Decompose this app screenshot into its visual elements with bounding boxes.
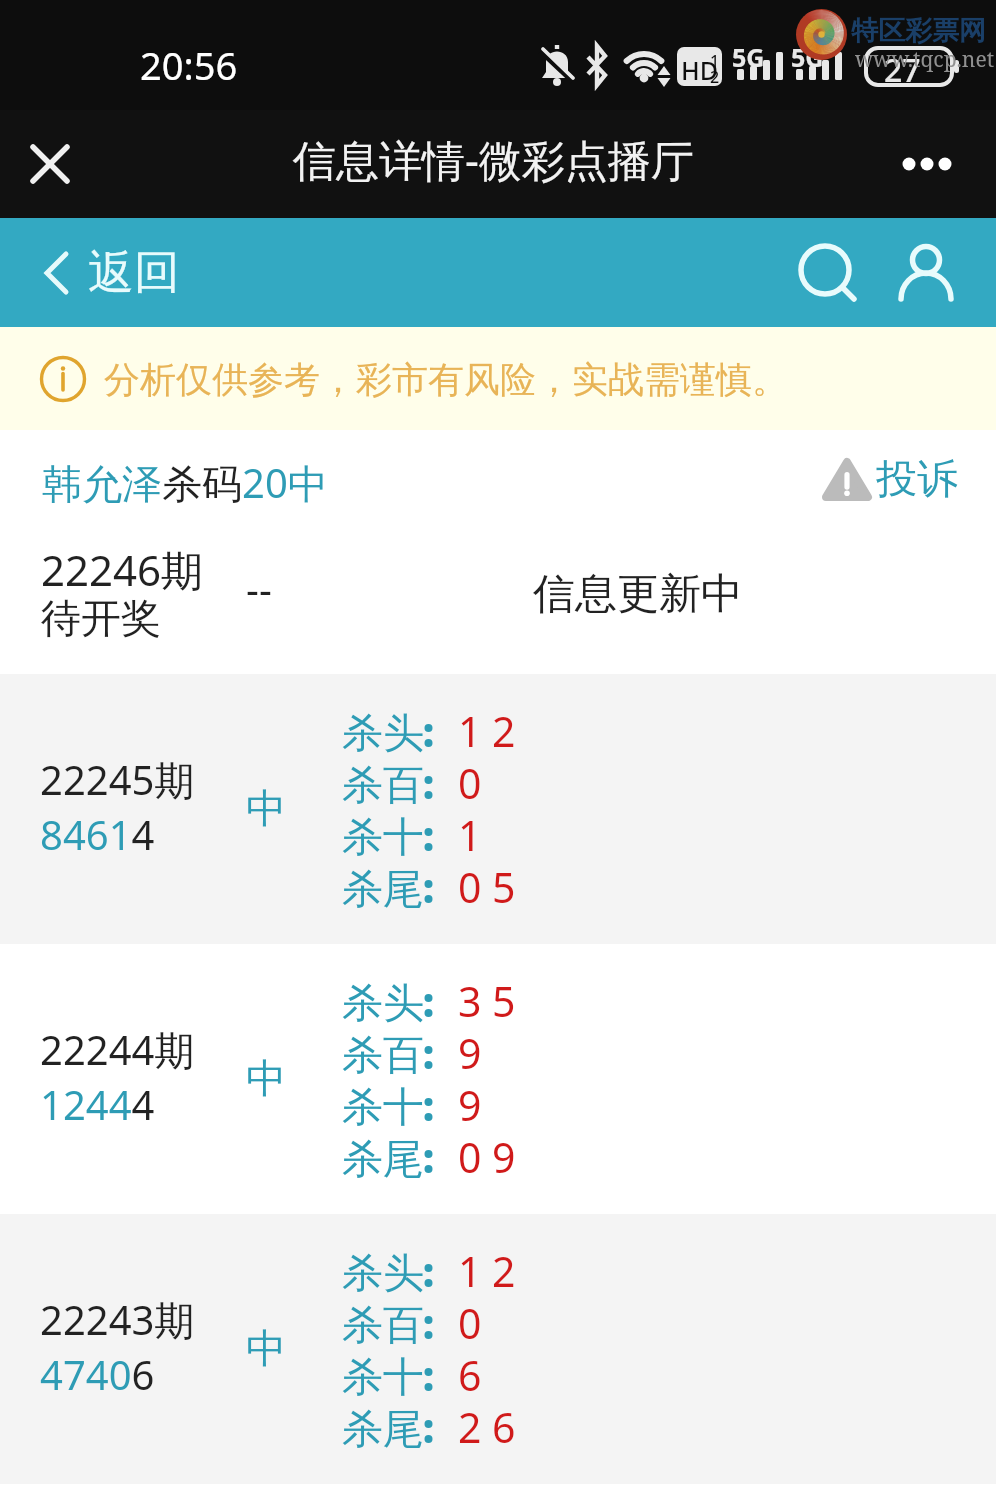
staticText: 投诉	[876, 454, 958, 506]
staticText: 特区彩票网	[851, 14, 986, 48]
staticText: 信息更新中	[533, 568, 743, 621]
staticText: 1	[710, 50, 720, 72]
staticText: 杀尾	[342, 1134, 424, 1186]
staticText: 22244期	[40, 1022, 195, 1077]
staticText: 中	[246, 1053, 286, 1103]
staticText: 0 9	[458, 1129, 516, 1185]
staticText: 22245期	[40, 752, 195, 807]
staticText: HD	[681, 53, 718, 87]
staticText: 杀百	[342, 760, 424, 812]
staticText: 1	[458, 807, 482, 863]
staticText: 杀头	[342, 708, 424, 760]
staticText: 杀头	[342, 1248, 424, 1300]
staticText: 22243期	[40, 1292, 195, 1347]
staticText: 杀头	[342, 978, 424, 1030]
staticText: 信息详情-微彩点播厅	[293, 130, 694, 189]
staticText: 9	[458, 1077, 482, 1133]
staticText: 1 2	[458, 1243, 516, 1299]
staticText: 返回	[88, 244, 180, 302]
staticText: 杀十	[342, 1082, 424, 1134]
staticText: 韩允泽杀码20中	[42, 455, 328, 510]
button[interactable]: More options	[884, 110, 970, 218]
button[interactable]: 22244期	[0, 944, 996, 1214]
button[interactable]: 投诉	[822, 454, 958, 506]
staticText: 3 5	[458, 973, 516, 1029]
staticText: 杀尾	[342, 864, 424, 916]
button[interactable]: 22243期	[0, 1214, 996, 1484]
staticText: 杀尾	[342, 1404, 424, 1456]
staticText: 中	[246, 1323, 286, 1373]
button[interactable]: Close	[15, 129, 85, 199]
staticText: 0	[458, 1295, 482, 1351]
staticText: 47406	[40, 1347, 155, 1401]
staticText: 22246期	[41, 541, 204, 598]
staticText: 待开奖	[41, 593, 161, 643]
staticText: --	[246, 561, 272, 615]
staticText: 0 5	[458, 859, 516, 915]
staticText: 1 2	[458, 703, 516, 759]
staticText: 9	[458, 1025, 482, 1081]
staticText: 84614	[40, 807, 155, 861]
staticText: 杀十	[342, 1352, 424, 1404]
staticText: www.tqcp.net	[855, 45, 995, 74]
staticText: 0	[458, 755, 482, 811]
staticText: 6	[458, 1347, 482, 1403]
staticText: 杀百	[342, 1030, 424, 1082]
staticText: 5G	[732, 40, 765, 74]
staticText: 2 6	[458, 1399, 516, 1455]
staticText: 20:56	[140, 39, 238, 91]
button[interactable]: Profile	[886, 218, 966, 327]
staticText: 杀百	[342, 1300, 424, 1352]
button[interactable]: 返回	[45, 244, 180, 302]
staticText: 分析仅供参考，彩市有风险，实战需谨慎。	[104, 357, 788, 402]
button[interactable]: 22245期	[0, 674, 996, 944]
button[interactable]: Search	[785, 218, 865, 327]
staticText: 中	[246, 783, 286, 833]
staticText: 杀十	[342, 812, 424, 864]
button[interactable]: 22246期	[0, 530, 996, 674]
staticText: 27	[884, 48, 921, 92]
staticText: 2	[710, 66, 720, 88]
staticText: 5G	[791, 40, 824, 74]
staticText: 12444	[40, 1077, 155, 1131]
